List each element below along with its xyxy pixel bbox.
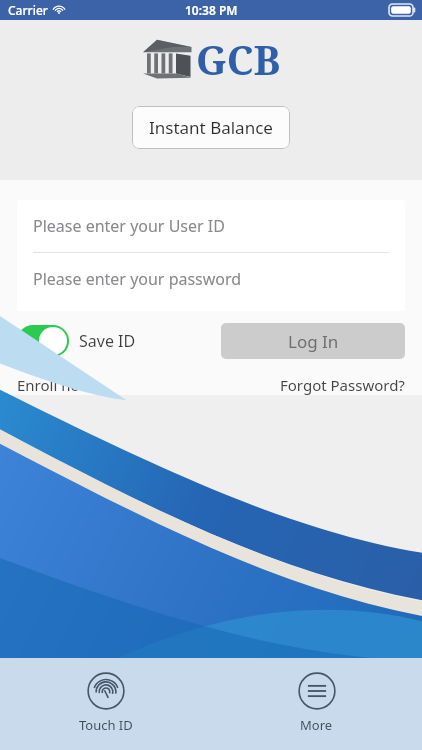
staticText: Enroll now — [17, 375, 92, 395]
staticText: Please enter your User ID — [33, 215, 225, 237]
staticText: More — [300, 716, 333, 734]
staticText: Please enter your password — [33, 268, 242, 290]
button[interactable]: Instant Balance — [132, 106, 290, 149]
staticText: 10:38 PM — [185, 2, 238, 18]
staticText: Log In — [288, 330, 339, 353]
staticText: Carrier — [8, 2, 48, 18]
button[interactable]: Forgot Password? — [280, 375, 405, 395]
button[interactable]: Log In — [221, 323, 405, 359]
staticText: Touch ID — [79, 716, 133, 734]
button[interactable]: Touch ID — [0, 658, 211, 734]
button[interactable]: Enroll now — [17, 375, 92, 395]
staticText: Instant Balance — [149, 116, 273, 139]
button[interactable]: Save ID — [17, 325, 136, 357]
button[interactable]: Please enter your password — [17, 253, 405, 305]
other: Touch ID — [87, 672, 125, 710]
button[interactable]: Please enter your User ID — [17, 200, 405, 252]
other: More — [298, 672, 336, 710]
staticText: Save ID — [79, 330, 136, 352]
staticText: Forgot Password? — [280, 375, 405, 395]
staticText: GCB — [196, 32, 281, 86]
button[interactable]: More — [211, 658, 422, 734]
